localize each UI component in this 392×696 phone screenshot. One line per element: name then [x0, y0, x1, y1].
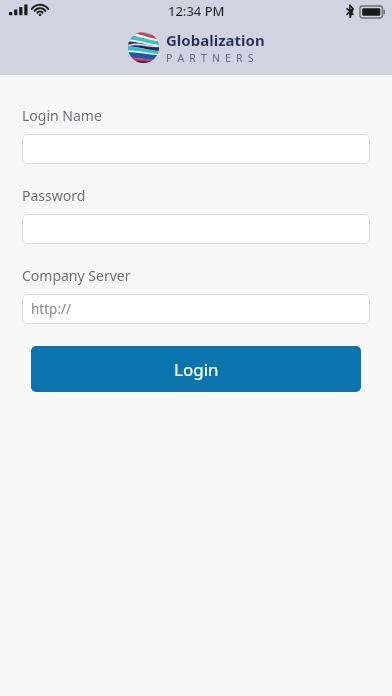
- staticText: P A R T N E R S: [166, 51, 255, 65]
- staticText: http://: [31, 300, 72, 318]
- staticText: Login Name: [22, 106, 102, 125]
- staticText: 12:34 PM: [168, 2, 225, 20]
- staticText: Globalization: [166, 30, 265, 50]
- button[interactable]: Company Server: [22, 294, 370, 324]
- button[interactable]: Login: [31, 346, 361, 392]
- staticText: Login: [174, 358, 219, 381]
- button[interactable]: Password: [22, 214, 370, 244]
- staticText: Password: [22, 186, 86, 205]
- staticText: Company Server: [22, 266, 131, 285]
- button[interactable]: Login Name: [22, 134, 370, 164]
